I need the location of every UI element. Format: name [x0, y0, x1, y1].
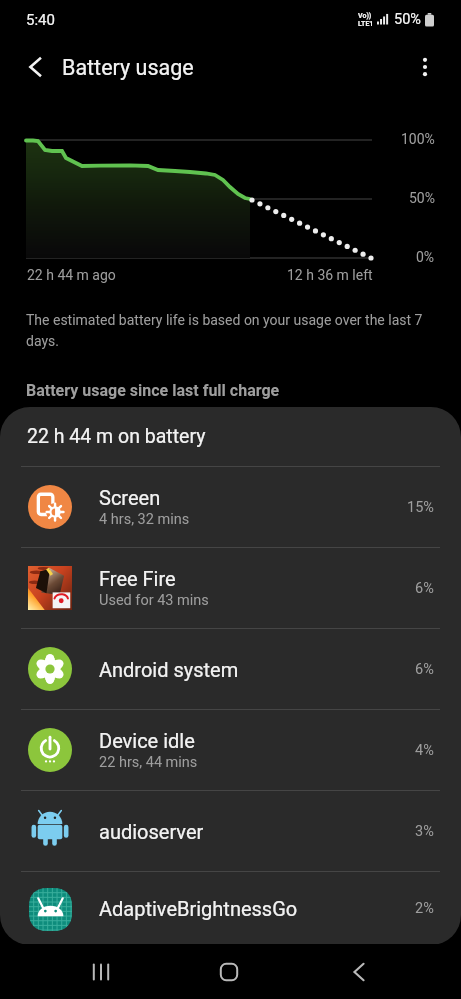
staticText: LTE1: [358, 20, 374, 28]
button[interactable]: audioserver: [0, 791, 461, 871]
staticText: Free Fire: [99, 567, 176, 590]
button[interactable]: Recent apps: [78, 944, 124, 999]
staticText: 4 hrs, 32 mins: [99, 511, 190, 528]
staticText: 0%: [416, 249, 435, 265]
staticText: 2%: [415, 900, 434, 917]
button[interactable]: More options: [403, 45, 447, 89]
button[interactable]: Back: [13, 45, 57, 89]
staticText: 5:40: [26, 11, 55, 29]
staticText: Device idle: [99, 729, 195, 752]
staticText: 22 h 44 m on battery: [27, 425, 206, 448]
button[interactable]: Back: [336, 944, 382, 999]
staticText: 50%: [394, 11, 421, 28]
staticText: audioserver: [99, 820, 204, 843]
staticText: Battery usage since last full charge: [26, 381, 280, 400]
button[interactable]: Android system: [0, 629, 461, 709]
staticText: 100%: [401, 131, 435, 147]
staticText: Android system: [99, 658, 239, 681]
staticText: Used for 43 mins: [99, 592, 209, 609]
staticText: 50%: [409, 190, 435, 206]
staticText: 22 hrs, 44 mins: [99, 754, 198, 771]
staticText: AdaptiveBrightnessGo: [99, 897, 298, 920]
button[interactable]: Screen: [0, 467, 461, 547]
staticText: 6%: [415, 661, 434, 678]
staticText: 6%: [415, 580, 434, 597]
button[interactable]: Free Fire: [0, 548, 461, 628]
button[interactable]: Home: [206, 944, 252, 999]
staticText: Vo)): [358, 12, 372, 20]
staticText: 4%: [415, 742, 434, 759]
staticText: Battery usage: [62, 55, 194, 80]
staticText: Screen: [99, 486, 161, 509]
staticText: 3%: [415, 823, 434, 840]
staticText: 12 h 36 m left: [287, 267, 373, 283]
staticText: 22 h 44 m ago: [27, 267, 116, 283]
button[interactable]: AdaptiveBrightnessGo: [0, 872, 461, 945]
staticText: The estimated battery life is based on y…: [26, 312, 435, 349]
staticText: 15%: [407, 499, 434, 516]
button[interactable]: Device idle: [0, 710, 461, 790]
